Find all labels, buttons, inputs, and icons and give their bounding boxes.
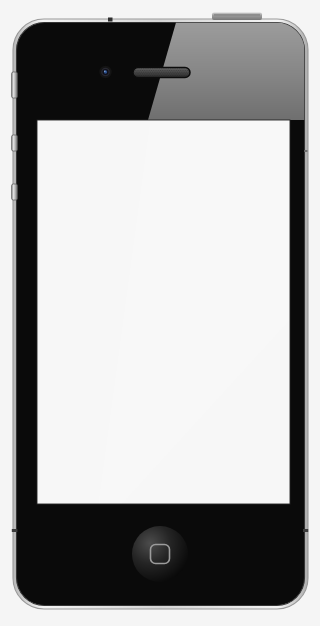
- button[interactable]: Volume up: [10, 133, 20, 153]
- button[interactable]: Power: [212, 10, 262, 22]
- button[interactable]: Home: [132, 526, 188, 582]
- button[interactable]: Volume down: [10, 182, 20, 202]
- button[interactable]: Silent switch: [10, 70, 20, 100]
- button[interactable]: Screen: [37, 120, 290, 504]
